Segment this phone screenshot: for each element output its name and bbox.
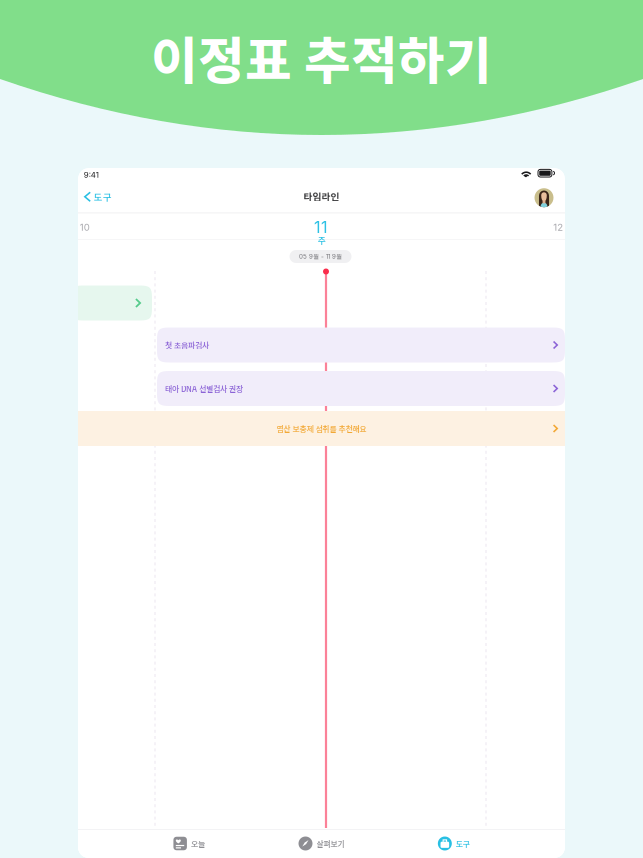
- staticText: 10: [80, 221, 90, 233]
- staticText: 살펴보기: [316, 838, 344, 849]
- staticText: 도구: [456, 838, 470, 849]
- staticText: 타임라인: [303, 189, 339, 203]
- staticText: 첫 초음파검사: [165, 339, 209, 351]
- staticText: 12: [553, 221, 563, 233]
- staticText: 11: [314, 217, 328, 237]
- button[interactable]: 첫 초음파검사: [157, 327, 565, 362]
- button[interactable]: 오늘: [123, 829, 255, 858]
- button[interactable]: 엽산 보충제 섭취를 추천해요: [78, 411, 565, 446]
- button[interactable]: Profile: [531, 185, 556, 210]
- button[interactable]: 태아 DNA 선별검사 권장: [157, 371, 565, 406]
- staticText: 태아 DNA 선별검사 권장: [165, 383, 243, 394]
- button[interactable]: 도구: [78, 187, 118, 206]
- staticText: 엽산 보충제 섭취를 추천해요: [276, 423, 366, 434]
- button[interactable]: 살펴보기: [255, 829, 388, 858]
- button[interactable]: 도구: [388, 829, 520, 858]
- staticText: 9:41: [84, 170, 99, 180]
- staticText: 오늘: [191, 838, 205, 849]
- staticText: 05 9월 - 11 9월: [299, 254, 342, 259]
- staticText: 이정표 추적하기: [151, 20, 492, 94]
- staticText: 도구: [94, 190, 112, 203]
- button[interactable]: Previous milestone: [71, 285, 152, 320]
- staticText: 주: [317, 236, 325, 244]
